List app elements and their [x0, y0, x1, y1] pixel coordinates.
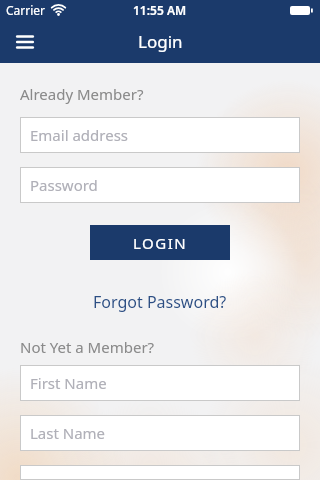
staticText: Password — [30, 175, 98, 195]
button[interactable]: Last Name — [20, 415, 300, 451]
button[interactable]: First Name — [20, 365, 300, 401]
staticText: Last Name — [30, 423, 106, 443]
button[interactable] — [10, 27, 40, 57]
staticText: Not Yet a Member? — [20, 337, 155, 357]
staticText: First Name — [30, 373, 107, 393]
staticText: Email address — [30, 125, 129, 145]
staticText: Already Member? — [20, 84, 144, 104]
button[interactable] — [20, 465, 300, 480]
staticText: Carrier — [6, 2, 46, 18]
staticText: LOGIN — [133, 233, 188, 253]
button[interactable]: Password — [20, 167, 300, 203]
button[interactable]: Email address — [20, 117, 300, 153]
staticText: Login — [138, 30, 183, 53]
button[interactable]: Forgot Password? — [93, 291, 227, 313]
staticText: 11:55 AM — [133, 2, 187, 18]
button[interactable]: LOGIN — [90, 225, 230, 260]
